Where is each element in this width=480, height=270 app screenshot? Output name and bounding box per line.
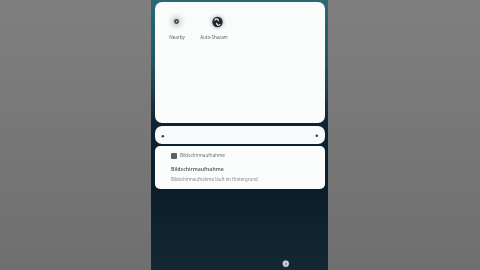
button[interactable] [278, 256, 294, 270]
staticText: Bildschirmaufnahme läuft im Hintergrund [171, 176, 258, 182]
button[interactable]: Auto-Shazam [202, 8, 234, 42]
staticText: Auto-Shazam [198, 34, 230, 41]
staticText: Nearby [163, 34, 191, 41]
staticText: Bildschirmaufnahme [171, 165, 224, 172]
button[interactable]: Nearby [163, 8, 191, 42]
button[interactable] [155, 126, 325, 144]
staticText: Bildschirmaufnahme [180, 152, 225, 158]
button[interactable]: Bildschirmaufnahme [155, 146, 325, 189]
